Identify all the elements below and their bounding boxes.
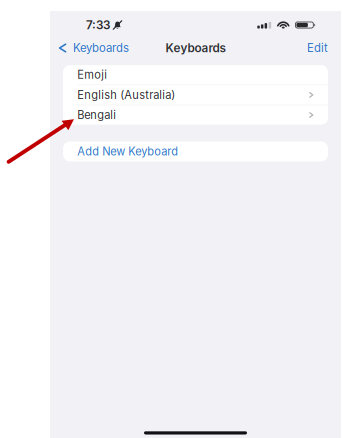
button[interactable]: Bengali — [63, 105, 328, 125]
staticText: Edit — [307, 41, 328, 55]
staticText: Emoji — [77, 68, 107, 81]
staticText: Add New Keyboard — [77, 145, 178, 158]
staticText: 7:33 — [86, 18, 110, 32]
button[interactable]: Edit — [301, 38, 341, 58]
staticText: English (Australia) — [77, 88, 175, 102]
staticText: Keyboards — [73, 41, 129, 55]
staticText: Bengali — [77, 108, 116, 122]
button[interactable]: English (Australia) — [63, 85, 328, 104]
button[interactable]: Emoji — [63, 65, 328, 84]
button[interactable]: Add New Keyboard — [63, 141, 328, 161]
button[interactable]: Keyboards — [50, 38, 135, 58]
staticText: Keyboards — [165, 41, 225, 55]
